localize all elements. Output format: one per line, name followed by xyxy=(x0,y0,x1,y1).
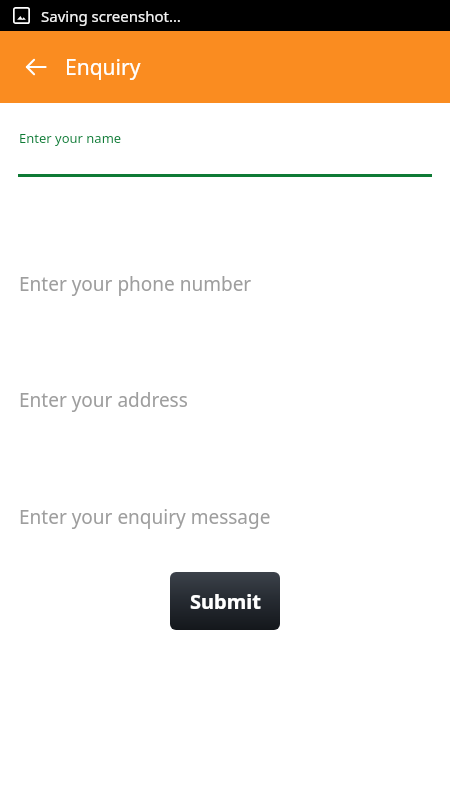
button[interactable]: Back xyxy=(14,45,58,89)
staticText: Enter your address xyxy=(19,387,188,413)
staticText: Saving screenshot… xyxy=(41,6,181,26)
button[interactable]: Enter your name xyxy=(0,124,450,188)
button[interactable]: Enter your enquiry message xyxy=(0,493,450,541)
staticText: Submit xyxy=(190,588,261,615)
staticText: Enter your enquiry message xyxy=(19,504,271,530)
button[interactable]: Submit xyxy=(170,572,280,630)
staticText: Enquiry xyxy=(65,53,141,82)
staticText: Enter your phone number xyxy=(19,271,252,297)
staticText: Enter your name xyxy=(19,129,122,147)
button[interactable]: Enter your address xyxy=(0,376,450,424)
button[interactable]: Enter your phone number xyxy=(0,260,450,308)
